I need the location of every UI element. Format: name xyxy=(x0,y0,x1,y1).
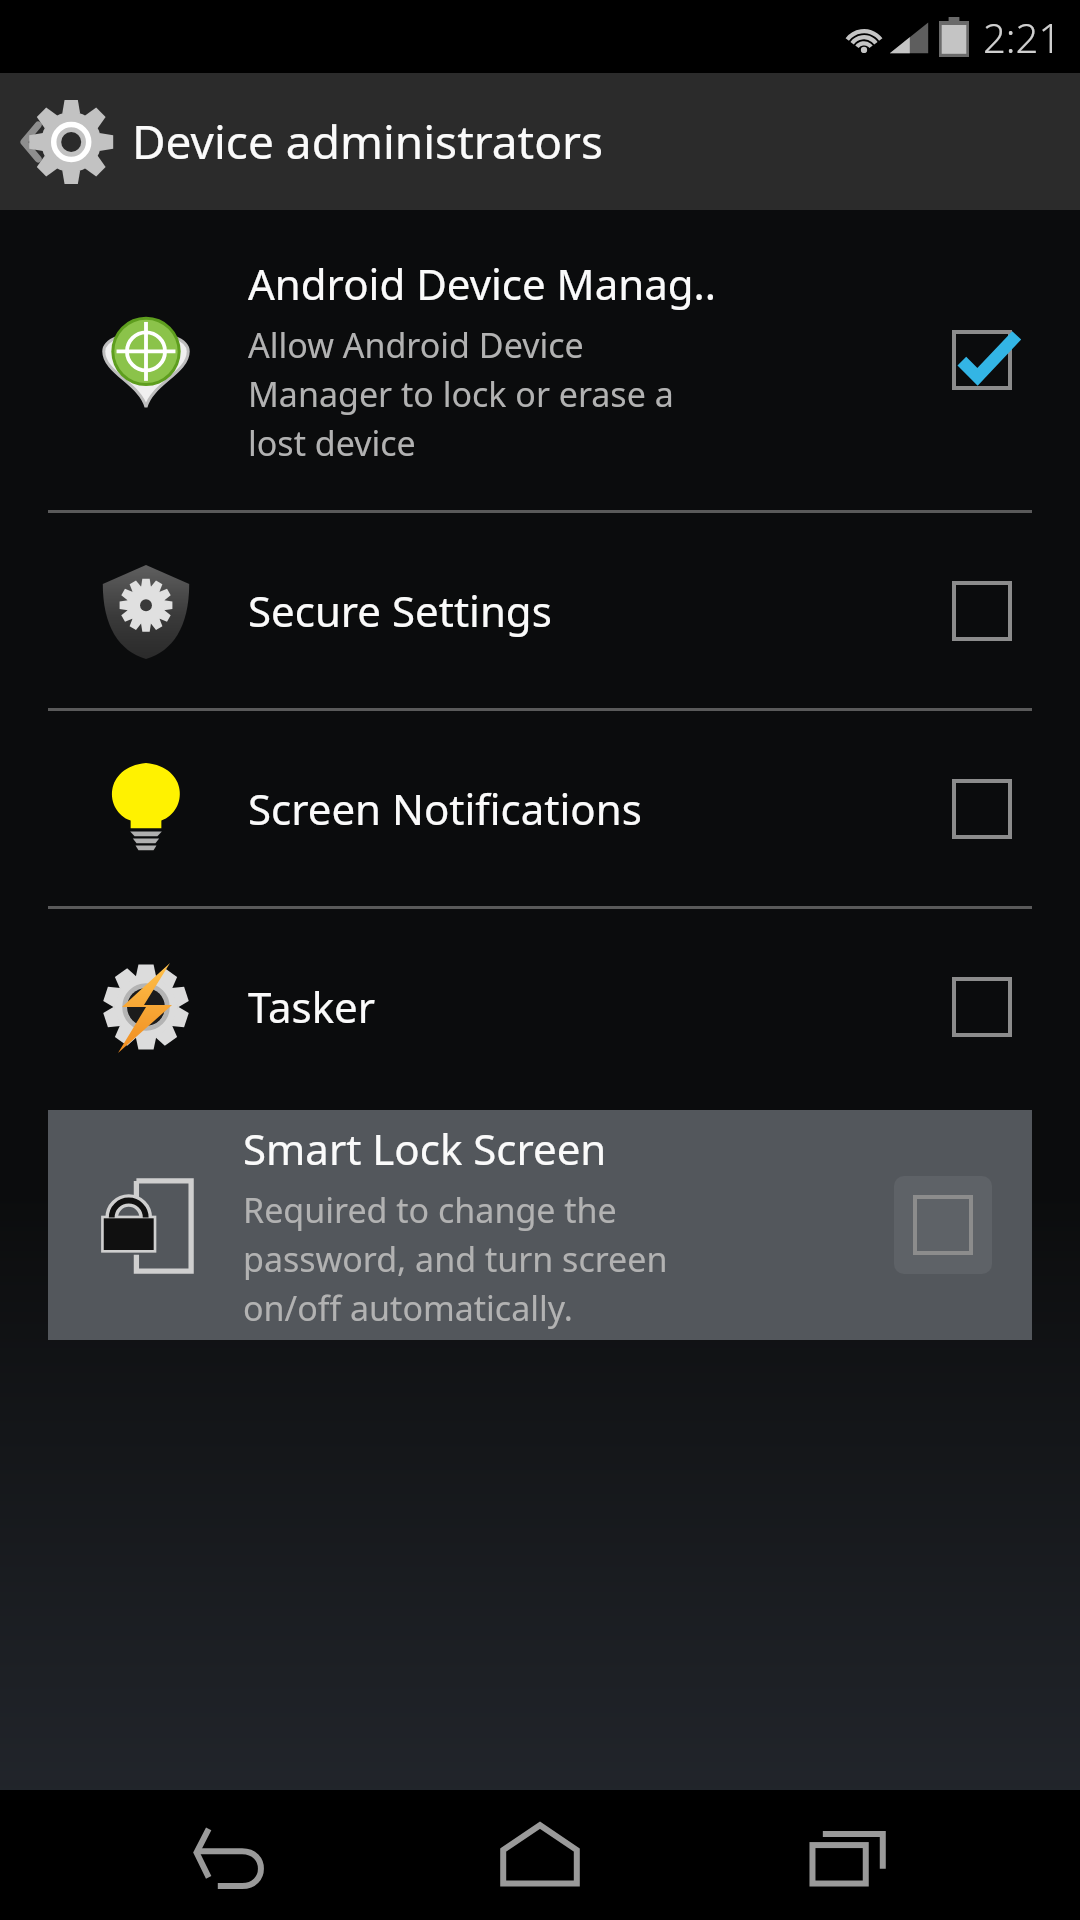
button[interactable]: Smart Lock Screen xyxy=(48,1110,1032,1340)
other: Navigate up xyxy=(14,92,124,192)
staticText: 2:21 xyxy=(983,10,1062,64)
button[interactable]: Home xyxy=(465,1805,615,1905)
button[interactable]: Secure Settings xyxy=(0,513,1080,708)
button[interactable]: Disabled xyxy=(942,967,1022,1047)
staticText: Required to change the password, and tur… xyxy=(243,1187,668,1331)
staticText: Smart Lock Screen xyxy=(243,1120,607,1177)
button[interactable]: Tasker xyxy=(0,909,1080,1104)
button[interactable]: Back xyxy=(158,1805,308,1905)
button[interactable]: Disabled xyxy=(942,571,1022,651)
button[interactable]: Disabled xyxy=(942,769,1022,849)
button[interactable]: Navigate up xyxy=(0,73,1080,210)
button[interactable]: Recent apps xyxy=(773,1805,923,1905)
staticText: Screen Notifications xyxy=(248,780,642,837)
button[interactable]: Enabled xyxy=(942,320,1022,400)
button[interactable]: Screen Notifications xyxy=(0,711,1080,906)
staticText: Secure Settings xyxy=(248,582,552,639)
staticText: Android Device Manag.. xyxy=(248,255,717,312)
staticText: Allow Android Device Manager to lock or … xyxy=(248,322,674,466)
button[interactable]: Disabled xyxy=(894,1176,992,1274)
button[interactable]: Android Device Manag.. xyxy=(0,210,1080,510)
staticText: Tasker xyxy=(248,978,376,1035)
staticText: Device administrators xyxy=(132,110,604,173)
